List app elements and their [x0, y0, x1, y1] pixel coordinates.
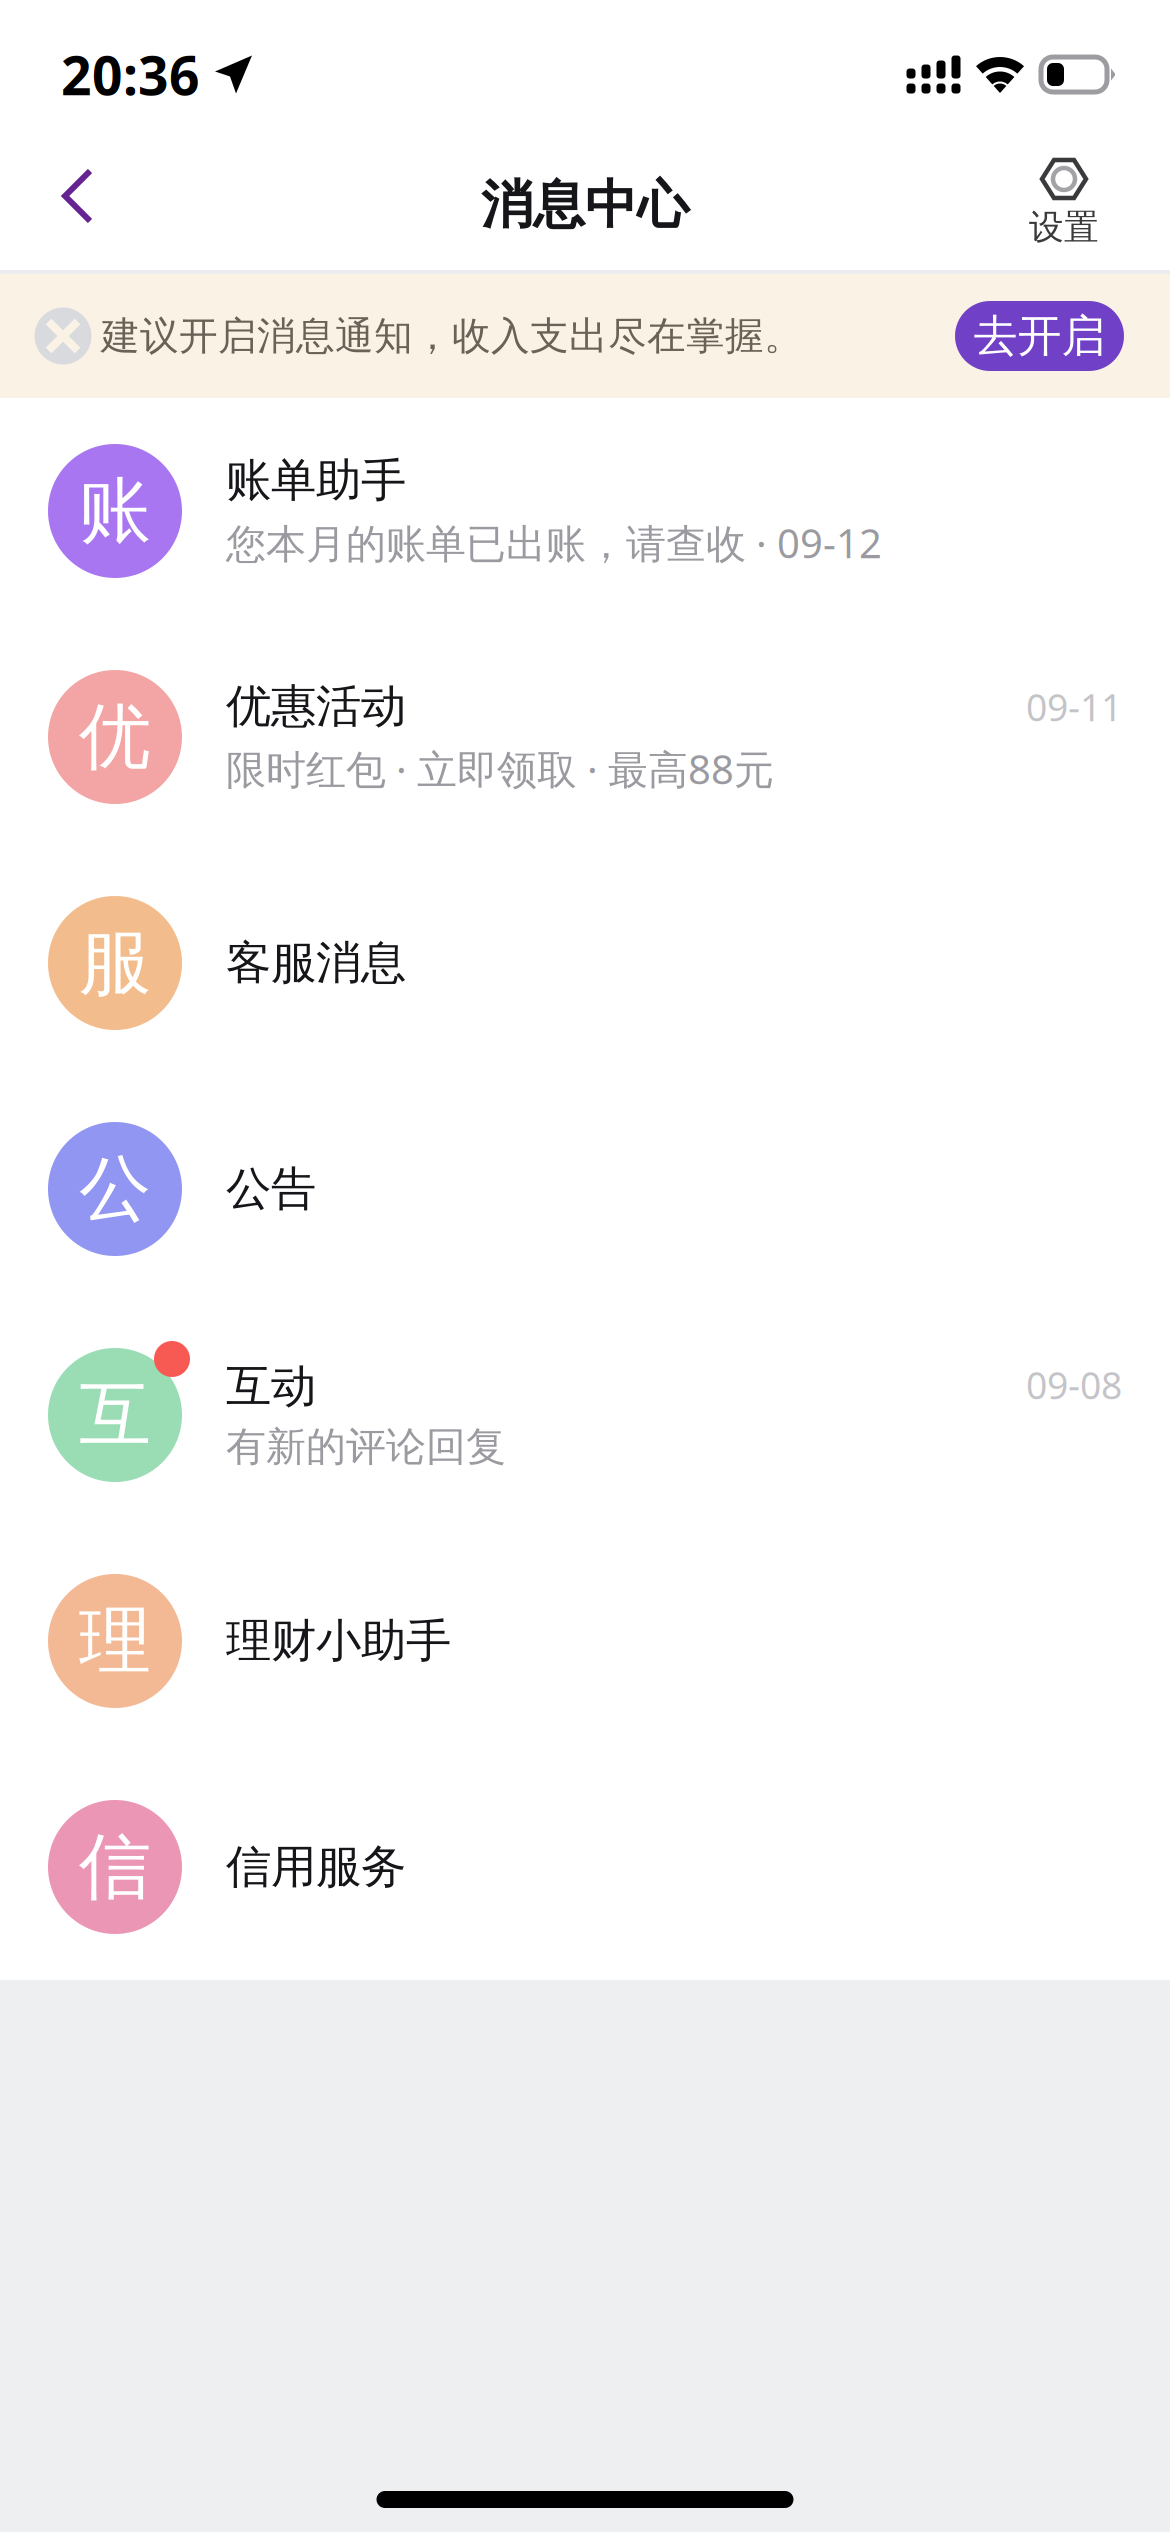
staticText: 理财小助手 — [226, 1613, 451, 1669]
staticText: 互 — [79, 1371, 151, 1459]
button[interactable]: 信 — [0, 1754, 1170, 1980]
staticText: 设置 — [1029, 206, 1099, 249]
staticText: 去开启 — [973, 309, 1105, 363]
button[interactable]: 服 — [0, 850, 1170, 1076]
staticText: 信用服务 — [226, 1839, 406, 1895]
staticText: 优惠活动 — [226, 679, 406, 734]
staticText: 09-08 — [1026, 1360, 1122, 1410]
staticText: 服 — [79, 919, 151, 1007]
staticText: 20:36 — [61, 39, 200, 110]
staticText: 公告 — [226, 1161, 316, 1217]
button[interactable]: 返回 — [8, 140, 148, 270]
staticText: 限时红包 · 立即领取 · 最高88元 — [226, 742, 774, 795]
staticText: 账单助手 — [226, 453, 406, 508]
button[interactable]: 互 — [0, 1302, 1170, 1528]
staticText: 09-11 — [1026, 682, 1122, 732]
staticText: 公 — [79, 1145, 151, 1233]
staticText: 您本月的账单已出账，请查收 · 09-12 — [226, 516, 882, 569]
staticText: 客服消息 — [226, 935, 406, 991]
staticText: 有新的评论回复 — [226, 1422, 506, 1471]
staticText: 优 — [79, 693, 151, 781]
staticText: 理 — [79, 1597, 151, 1685]
button[interactable]: 账 — [0, 398, 1170, 624]
button[interactable]: 公 — [0, 1076, 1170, 1302]
staticText: 建议开启消息通知，收入支出尽在掌握。 — [101, 312, 803, 360]
staticText: 互动 — [226, 1359, 316, 1414]
button[interactable]: 优 — [0, 624, 1170, 850]
button[interactable]: 理 — [0, 1528, 1170, 1754]
button[interactable]: 去开启 — [955, 301, 1124, 371]
staticText: 信 — [79, 1823, 151, 1911]
staticText: 账 — [79, 467, 151, 555]
button[interactable]: 关闭 — [26, 274, 100, 398]
staticText: 消息中心 — [481, 173, 689, 237]
button[interactable]: 设置 — [989, 140, 1139, 270]
